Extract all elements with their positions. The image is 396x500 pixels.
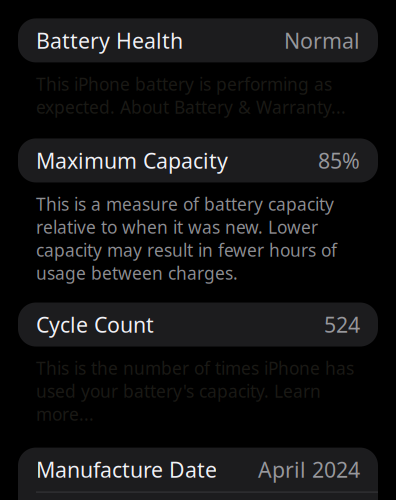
staticText: Normal (284, 26, 360, 55)
staticText: This is a measure of battery capacity re… (36, 192, 337, 285)
staticText: April 2024 (258, 455, 360, 484)
staticText: Maximum Capacity (36, 146, 228, 175)
staticText: 524 (324, 310, 360, 339)
staticText: Battery Health (36, 26, 183, 55)
staticText: Manufacture Date (36, 455, 217, 484)
staticText: This iPhone battery is performing as exp… (36, 72, 346, 118)
staticText: 85% (318, 146, 360, 175)
button[interactable]: Manufacture Date (18, 448, 378, 492)
staticText: This is the number of times iPhone has u… (36, 356, 354, 426)
button[interactable]: Battery Health (18, 18, 378, 62)
staticText: Cycle Count (36, 310, 154, 339)
button[interactable]: Cycle Count (18, 302, 378, 346)
button[interactable]: Maximum Capacity (18, 138, 378, 182)
